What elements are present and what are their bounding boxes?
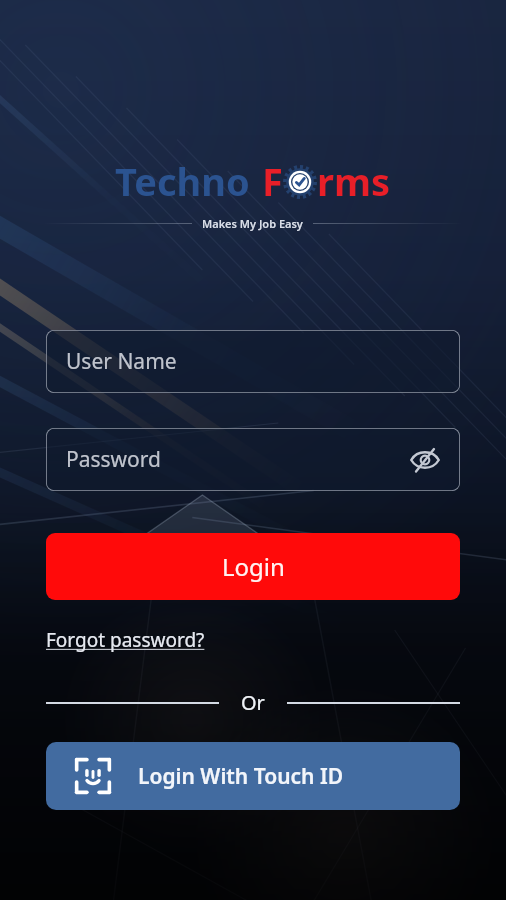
- staticText: F: [262, 155, 283, 207]
- button[interactable]: User Name: [46, 330, 460, 393]
- staticText: rms: [317, 155, 391, 207]
- button[interactable]: Password: [46, 428, 460, 491]
- staticText: Password: [66, 445, 161, 474]
- other: Login With Touch ID: [74, 757, 112, 795]
- staticText: Techno: [115, 155, 250, 207]
- staticText: User Name: [66, 347, 177, 376]
- staticText: Login With Touch ID: [138, 762, 344, 791]
- button[interactable]: Login: [46, 533, 460, 600]
- button[interactable]: Login With Touch ID: [46, 742, 460, 810]
- staticText: Forgot password?: [46, 627, 205, 653]
- button[interactable]: Forgot password?: [46, 627, 205, 653]
- staticText: Login: [222, 550, 285, 583]
- staticText: Makes My Job Easy: [202, 216, 303, 231]
- button[interactable]: Show password: [404, 439, 446, 481]
- staticText: Or: [241, 689, 265, 716]
